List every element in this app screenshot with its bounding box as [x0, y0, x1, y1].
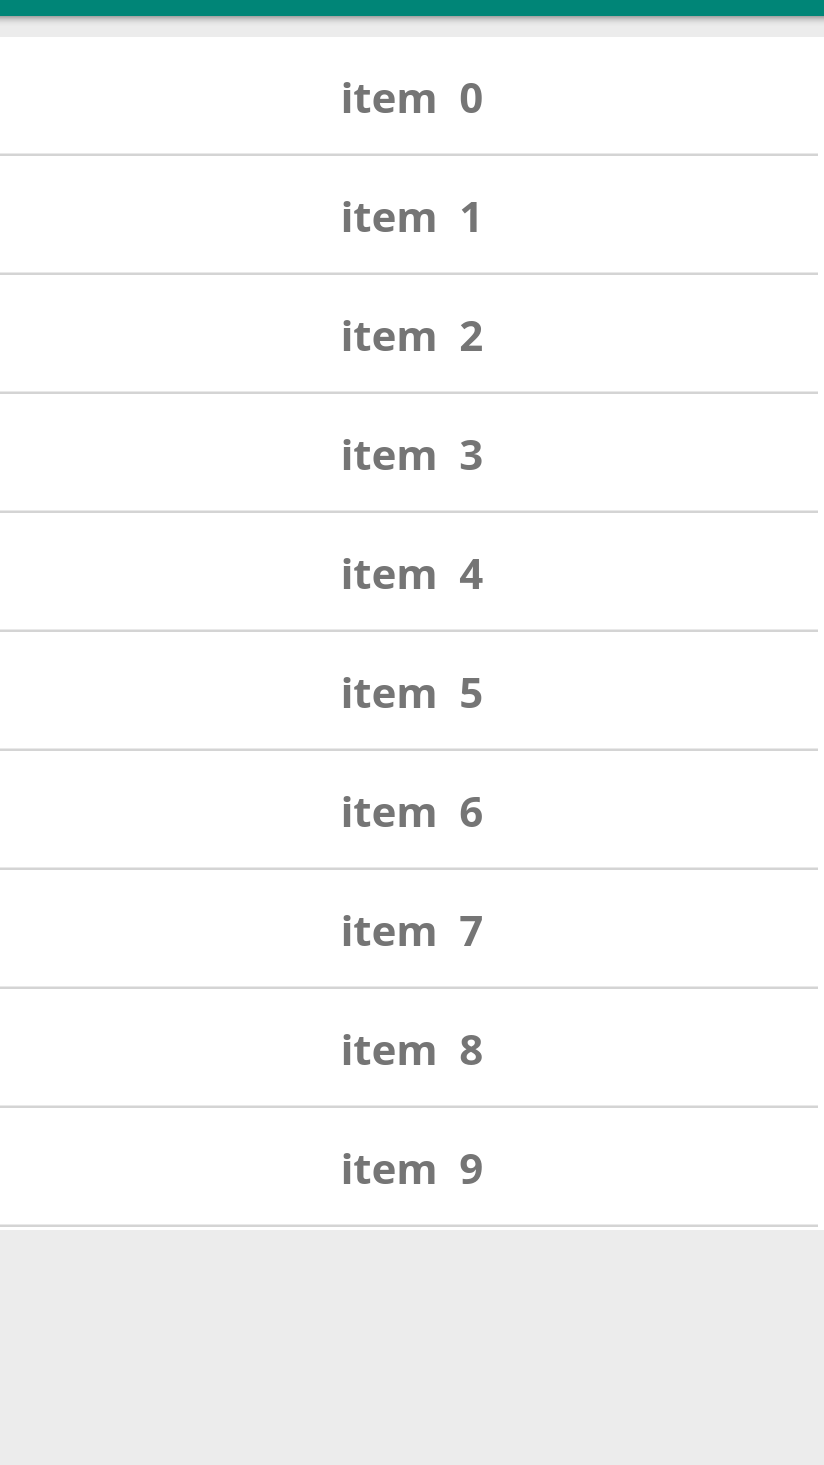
staticText: item 1: [0, 187, 824, 244]
button[interactable]: item 8: [0, 989, 824, 1108]
button[interactable]: item 9: [0, 1108, 824, 1227]
staticText: item 4: [0, 544, 824, 601]
staticText: item 3: [0, 425, 824, 482]
button[interactable]: item 7: [0, 870, 824, 989]
staticText: item 7: [0, 901, 824, 958]
staticText: item 8: [0, 1020, 824, 1077]
staticText: item 0: [0, 68, 824, 125]
staticText: item 6: [0, 782, 824, 839]
button[interactable]: item 1: [0, 156, 824, 275]
staticText: item 2: [0, 306, 824, 363]
button[interactable]: item 2: [0, 275, 824, 394]
button[interactable]: item 5: [0, 632, 824, 751]
button[interactable]: item 0: [0, 37, 824, 156]
button[interactable]: item 4: [0, 513, 824, 632]
button[interactable]: item 3: [0, 394, 824, 513]
staticText: item 5: [0, 663, 824, 720]
staticText: item 9: [0, 1139, 824, 1196]
button[interactable]: item 6: [0, 751, 824, 870]
